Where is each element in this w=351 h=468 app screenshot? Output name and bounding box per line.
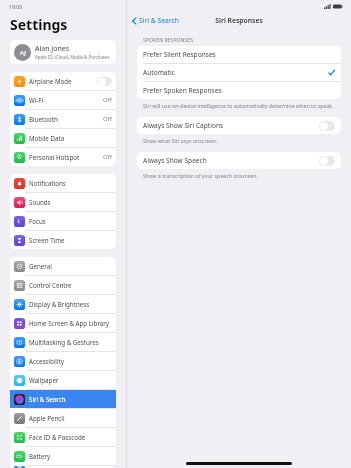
button[interactable]: Focus [10, 212, 116, 230]
staticText: Notifications [29, 179, 66, 187]
staticText: Automatic [143, 68, 175, 77]
staticText: Wi-Fi [29, 96, 44, 104]
button[interactable]: Battery [10, 447, 116, 465]
staticText: Always Show Siri Captions [143, 121, 224, 130]
staticText: Show what Siri says onscreen. [143, 137, 218, 144]
button[interactable]: Control Centre [10, 276, 116, 294]
button[interactable]: Apple Pencil [10, 409, 116, 427]
staticText: Siri will use on-device intelligence to … [143, 102, 334, 109]
button[interactable]: Automatic [137, 64, 341, 81]
button[interactable]: Siri & Search [132, 16, 180, 25]
staticText: Wallpaper [29, 376, 59, 384]
button[interactable]: Always Show Speech [137, 152, 341, 169]
button[interactable]: Prefer Silent Responses [137, 46, 341, 63]
button[interactable]: Wi-Fi [10, 91, 116, 109]
button[interactable]: Accessibility [10, 352, 116, 370]
staticText: Settings [10, 15, 68, 34]
button[interactable]: Wallpaper [10, 371, 116, 389]
staticText: Show a transcription of your speech onsc… [143, 172, 258, 179]
button[interactable]: Face ID & Passcode [10, 428, 116, 446]
button[interactable]: Sounds [10, 193, 116, 211]
staticText: SPOKEN RESPONSES [143, 36, 194, 43]
staticText: Siri & Search [139, 16, 180, 25]
staticText: Display & Brightness [29, 300, 90, 308]
button[interactable]: Privacy & Security [10, 466, 116, 468]
button[interactable]: Screen Time [10, 231, 116, 249]
button[interactable]: Bluetooth [10, 110, 116, 128]
button[interactable]: Display & Brightness [10, 295, 116, 313]
button[interactable]: Home Screen & App Library [10, 314, 116, 332]
staticText: Siri & Search [29, 395, 66, 403]
staticText: Battery [29, 452, 51, 460]
staticText: Sounds [29, 198, 51, 206]
button[interactable]: Always Show Siri Captions toggle [319, 121, 335, 131]
button[interactable]: Airplane Mode toggle [97, 77, 112, 86]
staticText: Screen Time [29, 236, 65, 244]
staticText: Focus [29, 217, 46, 225]
staticText: Off [103, 115, 112, 123]
button[interactable]: General [10, 257, 116, 275]
button[interactable]: AJ [10, 40, 116, 64]
button[interactable]: Notifications [10, 174, 116, 192]
staticText: Accessibility [29, 357, 64, 365]
staticText: Bluetooth [29, 115, 58, 123]
staticText: Mobile Data [29, 134, 65, 142]
staticText: Face ID & Passcode [29, 433, 86, 441]
button[interactable]: Mobile Data [10, 129, 116, 147]
button[interactable]: Always Show Speech toggle [319, 156, 335, 166]
staticText: Off [103, 153, 112, 161]
staticText: 19:00 [9, 3, 23, 10]
staticText: Apple Pencil [29, 414, 65, 422]
button[interactable]: Airplane Mode [10, 72, 116, 90]
staticText: Off [103, 96, 112, 104]
staticText: Always Show Speech [143, 156, 207, 165]
button[interactable]: Prefer Spoken Responses [137, 82, 341, 99]
button[interactable]: Always Show Siri Captions [137, 117, 341, 134]
button[interactable]: Siri & Search [10, 390, 116, 408]
staticText: Prefer Spoken Responses [143, 86, 222, 95]
staticText: Prefer Silent Responses [143, 50, 216, 59]
staticText: Personal Hotspot [29, 153, 80, 161]
staticText: AJ [20, 49, 26, 57]
staticText: Control Centre [29, 281, 72, 289]
staticText: General [29, 262, 52, 270]
staticText: Siri Responses [215, 16, 263, 25]
staticText: Airplane Mode [29, 77, 72, 85]
staticText: Apple ID, iCloud, Media & Purchases [35, 54, 110, 60]
button[interactable]: Personal Hotspot [10, 148, 116, 166]
staticText: Multitasking & Gestures [29, 338, 99, 346]
staticText: Home Screen & App Library [29, 319, 109, 327]
staticText: Alan Jones [35, 44, 70, 54]
button[interactable]: Multitasking & Gestures [10, 333, 116, 351]
